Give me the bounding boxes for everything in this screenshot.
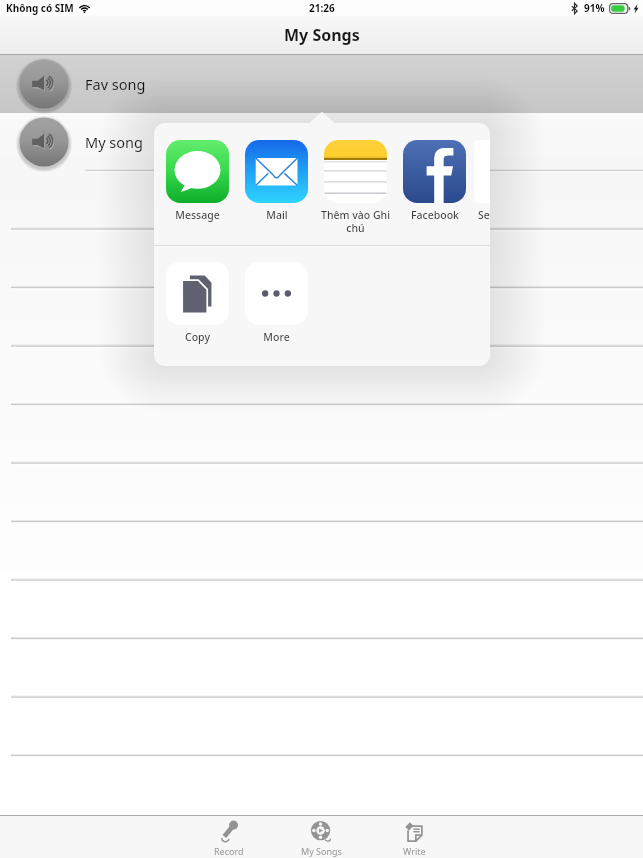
staticText: 21:26 <box>309 1 335 15</box>
staticText: Thêm vào Ghi chú <box>316 208 395 235</box>
staticText: My Songs <box>301 845 342 857</box>
staticText: Se <box>478 208 490 222</box>
button[interactable]: Facebook <box>395 140 474 222</box>
button[interactable]: My Songs <box>275 820 368 857</box>
staticText: Copy <box>185 330 210 344</box>
button[interactable]: Play Fav song <box>0 55 643 113</box>
button[interactable]: Play Fav song <box>18 58 70 110</box>
staticText: Record <box>214 845 244 857</box>
button[interactable]: Play My song <box>0 113 643 171</box>
staticText: Không có SIM <box>6 1 74 15</box>
button[interactable]: Thêm vào Ghi chú <box>316 140 395 235</box>
button[interactable]: More <box>237 262 316 344</box>
staticText: Facebook <box>411 208 459 222</box>
staticText: Fav song <box>85 74 146 94</box>
staticText: More <box>263 330 290 344</box>
staticText: My Songs <box>284 24 360 46</box>
button[interactable]: Play My song <box>18 116 70 168</box>
staticText: Write <box>403 845 426 857</box>
staticText: 91% <box>584 1 605 15</box>
button[interactable]: Record <box>182 820 275 857</box>
button[interactable]: Copy <box>158 262 237 344</box>
staticText: Mail <box>266 208 288 222</box>
staticText: Message <box>175 208 220 222</box>
button[interactable]: Write <box>368 820 461 857</box>
button[interactable]: Mail <box>237 140 316 222</box>
button[interactable]: Se <box>474 140 490 222</box>
button[interactable]: Message <box>158 140 237 222</box>
staticText: My song <box>85 132 143 152</box>
